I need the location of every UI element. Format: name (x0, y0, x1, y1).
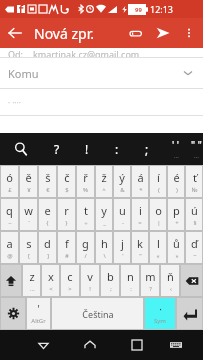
button[interactable]: Komu (0, 58, 203, 88)
staticText: % (83, 186, 88, 194)
staticText: » (175, 252, 179, 260)
button[interactable]: b (101, 265, 119, 296)
button[interactable]: w (20, 199, 37, 230)
button[interactable]: e (39, 199, 56, 230)
button[interactable]: Home (75, 330, 105, 360)
staticText: č (64, 170, 70, 185)
staticText: : (130, 285, 132, 293)
staticText: / (84, 252, 87, 260)
staticText: € (46, 186, 50, 194)
button[interactable]: u (114, 199, 130, 230)
staticText: í (157, 170, 160, 185)
button[interactable]: Čeština (52, 298, 143, 329)
button[interactable]: ý (114, 166, 130, 197)
button[interactable]: ? (42, 133, 72, 165)
staticText: ... (194, 152, 199, 160)
button[interactable]: ě (20, 166, 37, 197)
button[interactable]: m (141, 265, 159, 296)
button[interactable]: r (58, 199, 75, 230)
button[interactable]: Back (0, 18, 30, 48)
button[interactable]: Expand recipients (177, 62, 199, 84)
button[interactable]: Settings (1, 298, 25, 329)
staticText: [ (28, 252, 30, 260)
button[interactable]: Hide keyboard (28, 330, 58, 360)
button[interactable]: x (42, 265, 59, 296)
button[interactable]: : (102, 133, 132, 165)
button[interactable]: s (20, 232, 37, 263)
button[interactable]: Search (0, 133, 42, 165)
button[interactable]: l (150, 232, 166, 263)
button[interactable]: š (39, 166, 56, 197)
button[interactable]: ; (132, 133, 162, 165)
staticText: kmartinak.cz@gmail.com (33, 48, 140, 57)
staticText: ¥ (27, 186, 31, 194)
button[interactable]: " " (190, 133, 203, 165)
button[interactable]: ď (186, 232, 202, 263)
button[interactable]: f (58, 232, 75, 263)
button[interactable]: ů (168, 232, 184, 263)
button[interactable]: Recent apps (122, 330, 152, 360)
staticText: \ (103, 252, 106, 260)
staticText: } (65, 219, 68, 227)
button[interactable]: ť (186, 166, 202, 197)
button[interactable]: ' (27, 298, 50, 329)
button[interactable]: č (58, 166, 75, 197)
button[interactable]: j (114, 232, 130, 263)
button[interactable]: · (145, 298, 175, 329)
staticText: § (193, 219, 197, 227)
button[interactable]: í (150, 166, 166, 197)
button[interactable]: Od: (0, 48, 203, 57)
staticText: d (44, 236, 51, 251)
button[interactable]: Switch keyboard (161, 330, 191, 360)
staticText: ž (101, 170, 107, 185)
staticText: ú (191, 203, 198, 218)
button[interactable]: ú (186, 199, 202, 230)
staticText: ! (85, 141, 89, 157)
button[interactable]: Shift (1, 265, 21, 296)
button[interactable]: a (1, 232, 18, 263)
staticText: ň (167, 269, 174, 284)
button[interactable]: k (132, 232, 148, 263)
button[interactable]: é (168, 166, 184, 197)
button[interactable]: z (23, 265, 40, 296)
button[interactable]: Enter (177, 298, 202, 329)
staticText: ... (174, 152, 179, 160)
staticText: ) (176, 186, 178, 194)
staticText: o (155, 203, 162, 218)
button[interactable]: i (132, 199, 148, 230)
staticText: ; (110, 285, 112, 293)
staticText: u (119, 203, 126, 218)
staticText: y (101, 203, 107, 218)
button[interactable]: d (39, 232, 56, 263)
button[interactable]: t (77, 199, 94, 230)
button[interactable]: Backspace (181, 265, 202, 296)
button[interactable]: ň (161, 265, 179, 296)
button[interactable]: g (77, 232, 94, 263)
button[interactable]: More options (177, 21, 201, 45)
button[interactable]: y (96, 199, 112, 230)
button[interactable]: v (81, 265, 99, 296)
staticText: < (49, 285, 53, 293)
button[interactable]: ! (72, 133, 102, 165)
button[interactable]: ' ' (162, 133, 190, 165)
staticText: š (45, 170, 51, 185)
button[interactable]: q (1, 199, 18, 230)
button[interactable]: Send (149, 19, 177, 47)
staticText: : (115, 141, 119, 157)
button[interactable]: ó (1, 166, 18, 197)
button[interactable]: Attach (121, 19, 149, 47)
button[interactable]: o (150, 199, 166, 230)
button[interactable]: c (61, 265, 79, 296)
staticText: ó (6, 170, 13, 185)
button[interactable]: p (168, 199, 184, 230)
button[interactable]: á (132, 166, 148, 197)
button[interactable]: ř (77, 166, 94, 197)
staticText: Čeština (82, 308, 114, 320)
staticText: á (137, 170, 144, 185)
button[interactable]: ž (96, 166, 112, 197)
button[interactable]: h (96, 232, 112, 263)
button[interactable]: n (121, 265, 139, 296)
staticText: z (29, 269, 35, 284)
staticText: № (191, 186, 198, 194)
